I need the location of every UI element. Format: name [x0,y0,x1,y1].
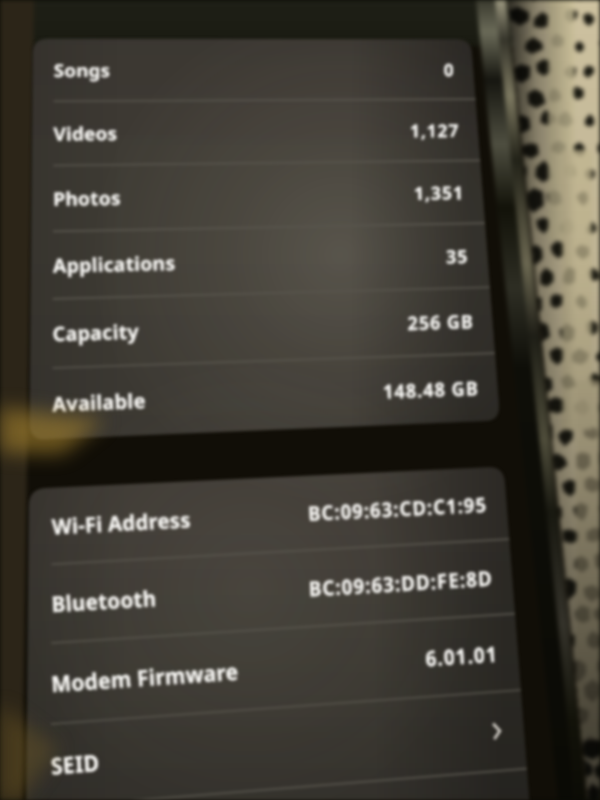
button[interactable]: About device information list [0,0,600,800]
